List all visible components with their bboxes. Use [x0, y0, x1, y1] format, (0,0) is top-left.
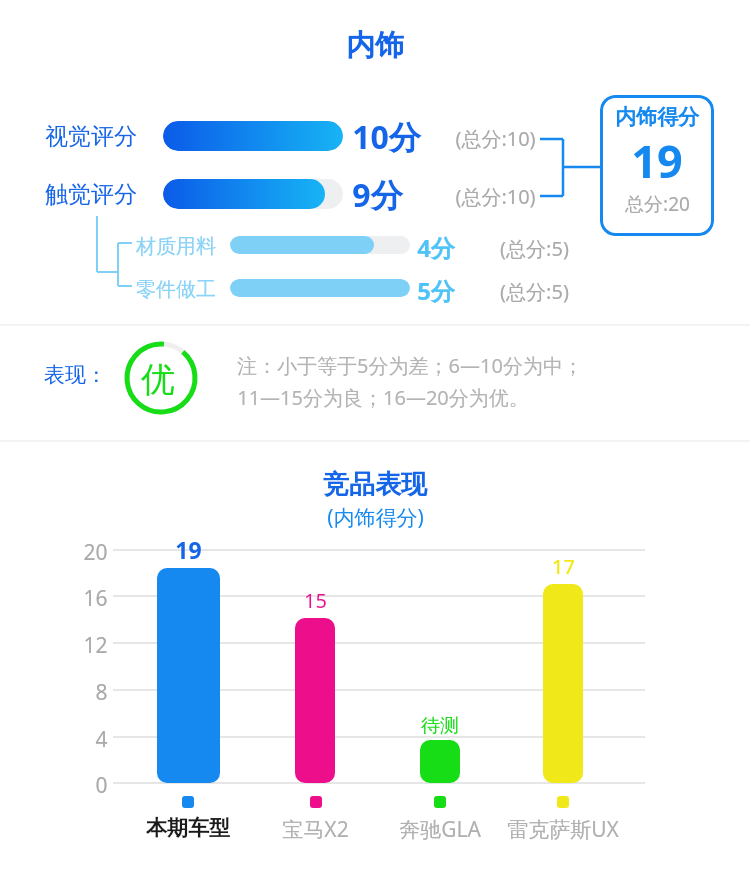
staticText: 9分 [352, 173, 403, 217]
staticText: 材质用料 [136, 234, 216, 259]
staticText: 优 [141, 358, 175, 401]
staticText: 19 [631, 130, 683, 191]
staticText: 宝马X2 [282, 815, 349, 844]
staticText: 20 [83, 538, 108, 567]
staticText: 触觉评分 [45, 180, 137, 209]
staticText: 视觉评分 [45, 122, 137, 151]
button[interactable] [230, 279, 410, 297]
staticText: 零件做工 [136, 277, 216, 302]
button[interactable]: 雷克萨斯UX [493, 796, 633, 844]
staticText: 19 [175, 534, 202, 565]
staticText: (总分:10) [455, 125, 536, 152]
button[interactable]: 宝马X2 [245, 796, 385, 844]
button[interactable]: 奔驰GLA [370, 796, 510, 844]
button[interactable] [543, 584, 583, 783]
staticText: 17 [552, 553, 575, 580]
staticText: 11—15分为良；16—20分为优。 [237, 384, 529, 411]
staticText: 5分 [417, 274, 455, 307]
staticText: (总分:5) [500, 278, 569, 305]
staticText: 10分 [352, 115, 421, 159]
staticText: (总分:5) [500, 235, 569, 262]
staticText: 0 [95, 771, 108, 800]
staticText: 待测 [421, 714, 459, 738]
button[interactable]: 本期车型 [118, 796, 258, 841]
staticText: (内饰得分) [327, 503, 424, 532]
staticText: 本期车型 [146, 815, 230, 841]
staticText: 雷克萨斯UX [507, 815, 619, 844]
staticText: (总分:10) [455, 183, 536, 210]
staticText: 内饰 [346, 27, 404, 64]
staticText: 竞品表现 [323, 468, 427, 501]
staticText: 12 [83, 631, 108, 660]
staticText: 8 [95, 678, 108, 707]
staticText: 4分 [417, 231, 455, 264]
staticText: 注：小于等于5分为差；6—10分为中； [237, 352, 583, 379]
other: 评级：优 [122, 340, 202, 420]
button[interactable] [295, 618, 335, 783]
staticText: 内饰得分 [615, 104, 699, 130]
staticText: 总分:20 [625, 191, 690, 217]
button[interactable] [163, 179, 343, 209]
staticText: 表现： [44, 362, 107, 388]
button[interactable] [420, 740, 460, 783]
button[interactable] [163, 121, 343, 151]
button[interactable] [157, 568, 220, 783]
staticText: 16 [83, 584, 108, 613]
staticText: 4 [95, 725, 108, 754]
staticText: 奔驰GLA [399, 815, 481, 844]
staticText: 15 [304, 587, 327, 614]
button[interactable]: 内饰得分 [600, 95, 714, 236]
button[interactable] [230, 236, 410, 254]
